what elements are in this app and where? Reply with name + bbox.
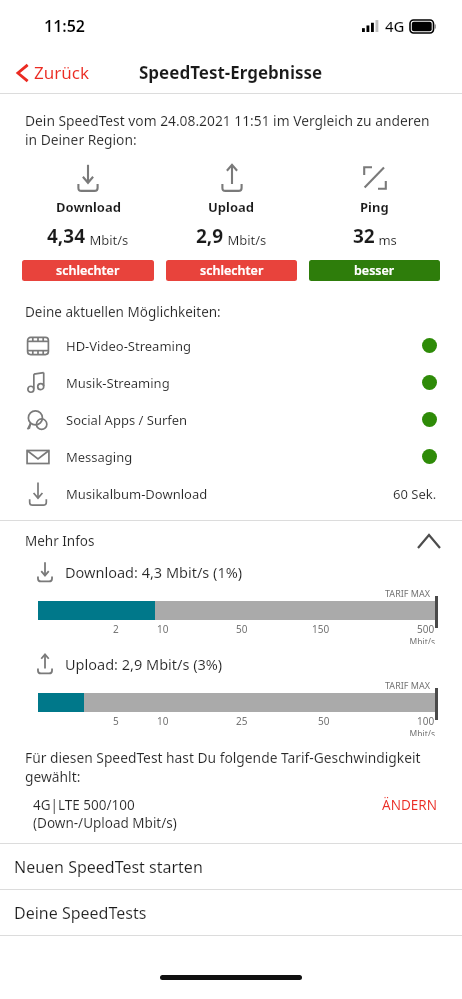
staticText: Messaging bbox=[66, 448, 422, 466]
staticText: schlechter bbox=[200, 262, 264, 279]
button[interactable]: besser bbox=[309, 260, 440, 281]
button[interactable]: Musikalbum-Download bbox=[0, 475, 462, 512]
staticText: 50 bbox=[318, 714, 330, 728]
staticText: Für diesen SpeedTest hast Du folgende Ta… bbox=[25, 748, 437, 786]
button[interactable]: Zurück bbox=[12, 57, 93, 88]
staticText: Mbit/s bbox=[86, 231, 129, 249]
staticText: Neuen SpeedTest starten bbox=[14, 856, 203, 878]
staticText: Musik-Streaming bbox=[66, 374, 422, 392]
button[interactable]: Musik-Streaming bbox=[0, 364, 462, 401]
staticText: 500 bbox=[417, 622, 435, 636]
staticText: 4,34 bbox=[47, 223, 86, 249]
staticText: 5 bbox=[113, 714, 119, 728]
staticText: Ping bbox=[360, 198, 389, 216]
button[interactable]: Deine SpeedTests bbox=[0, 890, 462, 935]
button[interactable]: schlechter bbox=[166, 260, 297, 281]
staticText: Social Apps / Surfen bbox=[66, 411, 422, 429]
staticText: Download: 4,3 Mbit/s (1%) bbox=[65, 562, 243, 582]
staticText: HD-Video-Streaming bbox=[66, 337, 422, 355]
staticText: 11:52 bbox=[44, 15, 86, 37]
staticText: TARIF MAX bbox=[385, 679, 430, 691]
button[interactable]: Mehr Infos bbox=[0, 521, 462, 561]
staticText: Deine SpeedTests bbox=[14, 902, 147, 924]
button[interactable]: Social Apps / Surfen bbox=[0, 401, 462, 438]
staticText: Mbit/s bbox=[409, 636, 435, 644]
staticText: Upload bbox=[208, 198, 255, 216]
staticText: schlechter bbox=[56, 262, 120, 279]
staticText: Dein SpeedTest vom 24.08.2021 11:51 im V… bbox=[25, 111, 437, 149]
staticText: (Down-/Upload Mbit/s) bbox=[33, 814, 177, 832]
button[interactable]: schlechter bbox=[22, 260, 154, 281]
staticText: Mehr Infos bbox=[25, 532, 95, 550]
button[interactable]: HD-Video-Streaming bbox=[0, 327, 462, 364]
staticText: 2,9 bbox=[196, 223, 224, 249]
button[interactable]: Messaging bbox=[0, 438, 462, 475]
button[interactable]: ÄNDERN bbox=[374, 796, 437, 814]
staticText: SpeedTest-Ergebnisse bbox=[139, 61, 323, 84]
staticText: Mbit/s bbox=[409, 728, 435, 736]
staticText: Download bbox=[56, 198, 121, 216]
staticText: 150 bbox=[312, 622, 330, 636]
staticText: 100 bbox=[417, 714, 435, 728]
staticText: TARIF MAX bbox=[385, 587, 430, 599]
staticText: 4G|LTE 500/100 bbox=[33, 796, 135, 814]
staticText: ÄNDERN bbox=[382, 796, 437, 814]
staticText: Mbit/s bbox=[224, 231, 267, 249]
staticText: Zurück bbox=[34, 61, 89, 84]
staticText: 10 bbox=[157, 714, 169, 728]
staticText: ms bbox=[375, 231, 397, 249]
staticText: Upload: 2,9 Mbit/s (3%) bbox=[65, 654, 223, 674]
staticText: 4G bbox=[385, 16, 405, 36]
staticText: 60 Sek. bbox=[393, 485, 437, 503]
staticText: besser bbox=[354, 262, 395, 279]
button[interactable]: Neuen SpeedTest starten bbox=[0, 844, 462, 889]
staticText: 50 bbox=[236, 622, 248, 636]
staticText: Musikalbum-Download bbox=[66, 485, 393, 503]
staticText: 2 bbox=[113, 622, 119, 636]
staticText: Deine aktuellen Möglichkeiten: bbox=[25, 303, 221, 321]
staticText: 10 bbox=[157, 622, 169, 636]
staticText: 32 bbox=[353, 223, 375, 249]
other: Mehr Infos einklappen bbox=[418, 535, 440, 548]
staticText: 25 bbox=[236, 714, 248, 728]
